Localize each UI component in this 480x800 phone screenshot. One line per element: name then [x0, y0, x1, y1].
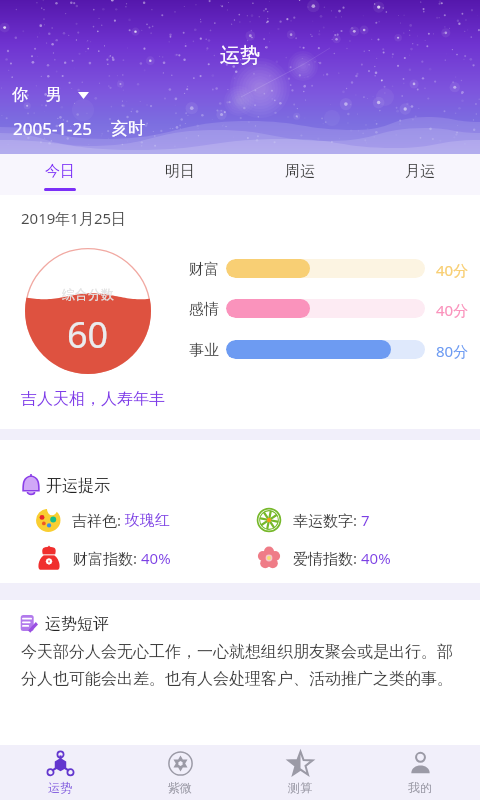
button[interactable]: 我的 [360, 745, 480, 800]
staticText: 爱情指数: [293, 548, 361, 568]
button[interactable]: 幸运数字: [256, 507, 370, 533]
staticText: 7 [361, 510, 370, 530]
button[interactable]: 紫微 [120, 745, 240, 800]
staticText: 40分 [436, 260, 469, 280]
staticText: 运势 [48, 780, 72, 795]
button[interactable]: 明日 [120, 154, 240, 195]
staticText: 男 [46, 85, 62, 105]
staticText: 2019年1月25日 [21, 208, 127, 228]
staticText: 80分 [436, 341, 469, 361]
button[interactable]: 今日 [0, 154, 120, 195]
staticText: 玫瑰红 [125, 511, 170, 530]
staticText: 吉人天相，人寿年丰 [21, 389, 165, 409]
button[interactable]: 运势 [0, 745, 120, 800]
staticText: 测算 [288, 780, 312, 795]
button[interactable]: 你 [12, 85, 89, 105]
staticText: 综合分数 [62, 286, 114, 302]
staticText: 40分 [436, 300, 469, 320]
staticText: 亥时 [111, 118, 145, 139]
staticText: 运势 [220, 43, 260, 68]
staticText: 幸运数字: [293, 510, 361, 530]
button[interactable]: 财富指数: [36, 545, 171, 571]
staticText: 40% [361, 548, 391, 568]
staticText: 紫微 [168, 780, 192, 795]
staticText: 月运 [405, 162, 435, 181]
staticText: 40% [141, 548, 171, 568]
staticText: 开运提示 [46, 476, 110, 496]
staticText: 60 [67, 310, 109, 359]
button[interactable]: 月运 [360, 154, 480, 195]
staticText: 财富 [189, 260, 219, 279]
staticText: 明日 [165, 162, 195, 181]
staticText: 事业 [189, 341, 219, 360]
staticText: 财富指数: [73, 548, 141, 568]
staticText: 感情 [189, 300, 219, 319]
button[interactable]: 吉祥色: [35, 507, 170, 533]
staticText: 今日 [45, 162, 75, 181]
button[interactable]: 爱情指数: [256, 545, 391, 571]
staticText: 周运 [285, 162, 315, 181]
staticText: 2005-1-25 [13, 117, 93, 140]
staticText: 运势短评 [45, 614, 109, 634]
button[interactable]: 周运 [240, 154, 360, 195]
staticText: 你 [12, 85, 28, 105]
staticText: 我的 [408, 780, 432, 795]
staticText: 今天部分人会无心工作，一心就想组织朋友聚会或是出行。部分人也可能会出差。也有人会… [21, 642, 462, 689]
staticText: 吉祥色: [72, 510, 125, 530]
button[interactable]: 测算 [240, 745, 360, 800]
